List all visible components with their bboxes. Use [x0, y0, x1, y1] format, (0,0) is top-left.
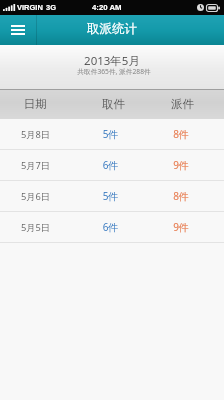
staticText: 4:20 AM — [92, 3, 122, 12]
staticText: 3G — [46, 3, 57, 11]
staticText: 8件 — [150, 189, 212, 203]
button[interactable]: 5月6日 — [0, 181, 224, 212]
staticText: 取件 — [70, 97, 157, 111]
staticText: 9件 — [150, 220, 212, 234]
staticText: 派件 — [157, 97, 208, 111]
button[interactable]: Menu — [0, 15, 36, 45]
staticText: 5件 — [71, 189, 150, 203]
staticText: 9件 — [150, 158, 212, 172]
staticText: 5月8日 — [0, 128, 71, 141]
button[interactable]: 5月8日 — [0, 119, 224, 150]
staticText: 共取件365件, 派件288件 — [2, 67, 224, 76]
staticText: 5件 — [71, 127, 150, 141]
staticText: 日期 — [0, 97, 70, 111]
staticText: 取派统计 — [87, 21, 137, 37]
staticText: 5月6日 — [0, 190, 71, 203]
staticText: 8件 — [150, 127, 212, 141]
staticText: 6件 — [71, 220, 150, 234]
staticText: 5月7日 — [0, 159, 71, 172]
staticText: 6件 — [71, 158, 150, 172]
staticText: VIRGIN — [17, 3, 43, 11]
staticText: 2013年5月 — [0, 53, 224, 69]
staticText: 5月5日 — [0, 221, 71, 234]
button[interactable]: 5月5日 — [0, 212, 224, 243]
button[interactable]: 5月7日 — [0, 150, 224, 181]
